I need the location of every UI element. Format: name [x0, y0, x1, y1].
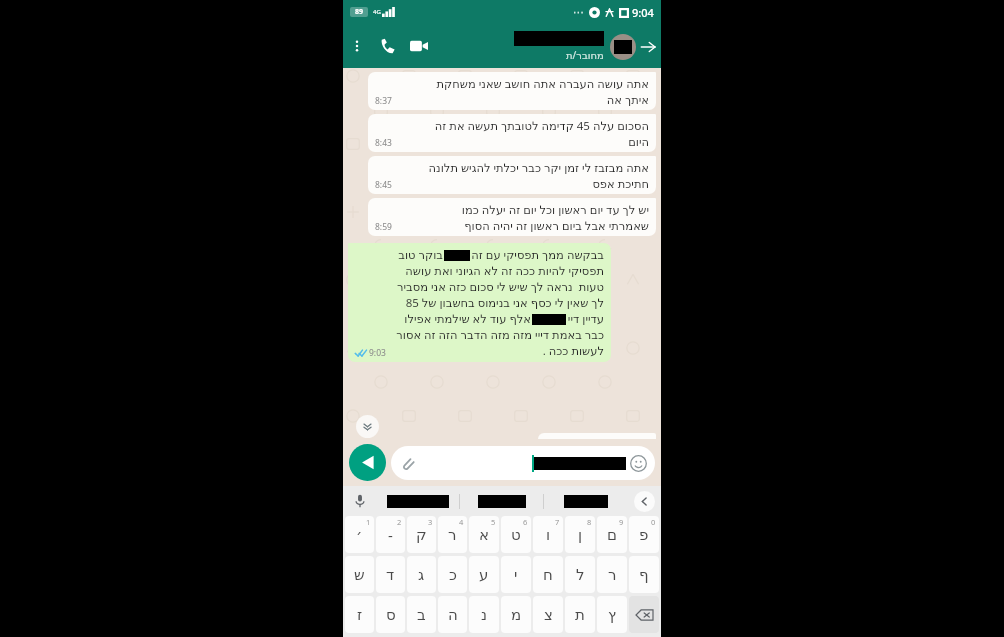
- button[interactable]: הסכום עלה 45 קדימה לטובתך תעשה את זה היו…: [368, 114, 656, 152]
- staticText: ף: [639, 566, 649, 583]
- staticText: א: [479, 526, 490, 543]
- staticText: צ: [544, 606, 553, 623]
- staticText: 9:03: [369, 347, 386, 359]
- button[interactable]: Send: [349, 444, 386, 481]
- staticText: עדיין דיי: [567, 311, 604, 327]
- staticText: ע: [479, 566, 489, 583]
- button[interactable]: Voice call: [371, 30, 403, 62]
- staticText: 2: [397, 517, 402, 527]
- button[interactable]: ת: [565, 596, 595, 633]
- button[interactable]: ה: [438, 596, 467, 633]
- staticText: מחובר/ת: [566, 48, 604, 62]
- staticText: ץ: [608, 606, 617, 623]
- button[interactable]: ע: [469, 556, 499, 593]
- button[interactable]: אתה מבזבז לי זמן יקר כבר יכלתי להגיש תלו…: [368, 156, 656, 194]
- staticText: ז: [357, 606, 363, 623]
- staticText: כ: [449, 566, 457, 583]
- button[interactable]: פ: [629, 516, 659, 553]
- button[interactable]: א: [469, 516, 499, 553]
- staticText: ש: [354, 566, 365, 583]
- button[interactable]: [460, 486, 543, 516]
- button[interactable]: Profile photo: [610, 34, 636, 60]
- staticText: ת: [575, 606, 585, 623]
- button[interactable]: אתה עושה העברה אתה חושב שאני משחקת איתך …: [368, 72, 656, 110]
- staticText: בוקר טוב: [398, 247, 443, 263]
- staticText: ק: [416, 526, 427, 543]
- button[interactable]: Scroll to bottom: [356, 415, 379, 438]
- staticText: הסכום עלה 45 קדימה לטובתך תעשה את זה היו…: [375, 118, 649, 149]
- staticText: 6: [523, 517, 528, 527]
- staticText: 9: [619, 517, 624, 527]
- staticText: אתה מבזבז לי זמן יקר כבר יכלתי להגיש תלו…: [375, 160, 649, 191]
- staticText: ⋯: [573, 6, 584, 19]
- button[interactable]: מ: [501, 596, 531, 633]
- button[interactable]: ז: [345, 596, 374, 633]
- button[interactable]: Backspace: [629, 596, 659, 633]
- staticText: נ: [481, 606, 488, 623]
- button[interactable]: ח: [533, 556, 563, 593]
- staticText: בבקשה ממך תפסיקי עם זה: [471, 247, 604, 263]
- button[interactable]: ן: [565, 516, 595, 553]
- staticText: ל: [576, 566, 585, 583]
- button[interactable]: יש לך עד יום ראשון וכל יום זה יעלה כמו ש…: [368, 198, 656, 236]
- button[interactable]: -: [376, 516, 405, 553]
- button[interactable]: כ: [438, 556, 467, 593]
- button[interactable]: ר: [438, 516, 467, 553]
- button[interactable]: צ: [533, 596, 563, 633]
- staticText: יש לך עד יום ראשון וכל יום זה יעלה כמו ש…: [375, 202, 649, 233]
- button[interactable]: נ: [469, 596, 499, 633]
- button[interactable]: More suggestions: [627, 486, 661, 516]
- button[interactable]: [544, 486, 627, 516]
- button[interactable]: ׳: [345, 516, 374, 553]
- button[interactable]: [391, 446, 655, 480]
- button[interactable]: ק: [407, 516, 436, 553]
- button[interactable]: ט: [501, 516, 531, 553]
- staticText: 8:59: [375, 221, 392, 233]
- staticText: 4: [459, 517, 464, 527]
- staticText: 8:37: [375, 95, 392, 107]
- button[interactable]: מחובר/ת: [514, 31, 604, 62]
- button[interactable]: ס: [376, 596, 405, 633]
- staticText: ט: [511, 526, 521, 543]
- staticText: 4G: [373, 8, 381, 16]
- staticText: 7: [555, 517, 560, 527]
- button[interactable]: Back: [637, 36, 659, 58]
- staticText: 1: [366, 517, 371, 527]
- button[interactable]: ד: [376, 556, 405, 593]
- button[interactable]: ר: [597, 556, 627, 593]
- staticText: ב: [417, 606, 426, 623]
- button[interactable]: ו: [533, 516, 563, 553]
- button[interactable]: י: [501, 556, 531, 593]
- staticText: 5: [491, 517, 496, 527]
- staticText: ר: [608, 566, 617, 583]
- staticText: תפסיקי להיות ככה זה לא הגיוני ואת עושה: [405, 263, 604, 279]
- staticText: י: [514, 566, 518, 583]
- staticText: ו: [546, 526, 551, 543]
- staticText: אתה עושה העברה אתה חושב שאני משחקת איתך …: [375, 76, 649, 107]
- staticText: 8:43: [375, 137, 392, 149]
- button[interactable]: ל: [565, 556, 595, 593]
- button[interactable]: More options: [343, 32, 371, 60]
- staticText: 3: [428, 517, 433, 527]
- button[interactable]: ף: [629, 556, 659, 593]
- button[interactable]: ם: [597, 516, 627, 553]
- staticText: ם: [607, 526, 617, 543]
- button[interactable]: ב: [407, 596, 436, 633]
- staticText: טעות נראה לך שיש לי סכום כזה אני מסביר: [397, 279, 604, 295]
- button[interactable]: Video call: [403, 30, 435, 62]
- staticText: כבר באמת דייי מזה מזה הדבר הזה זה אסור: [396, 327, 604, 343]
- staticText: ד: [386, 566, 395, 583]
- button[interactable]: ג: [407, 556, 436, 593]
- staticText: ח: [543, 566, 553, 583]
- staticText: ר: [448, 526, 457, 543]
- staticText: ס: [386, 606, 396, 623]
- staticText: ה: [448, 606, 458, 623]
- staticText: אלף עוד לא שילמתי אפילו: [404, 311, 531, 327]
- staticText: ׳: [356, 526, 363, 543]
- button[interactable]: Voice input: [343, 486, 377, 516]
- button[interactable]: [377, 486, 459, 516]
- staticText: ג: [418, 566, 425, 583]
- button[interactable]: בוקר טוב: [348, 243, 611, 362]
- button[interactable]: ץ: [597, 596, 627, 633]
- button[interactable]: ש: [345, 556, 374, 593]
